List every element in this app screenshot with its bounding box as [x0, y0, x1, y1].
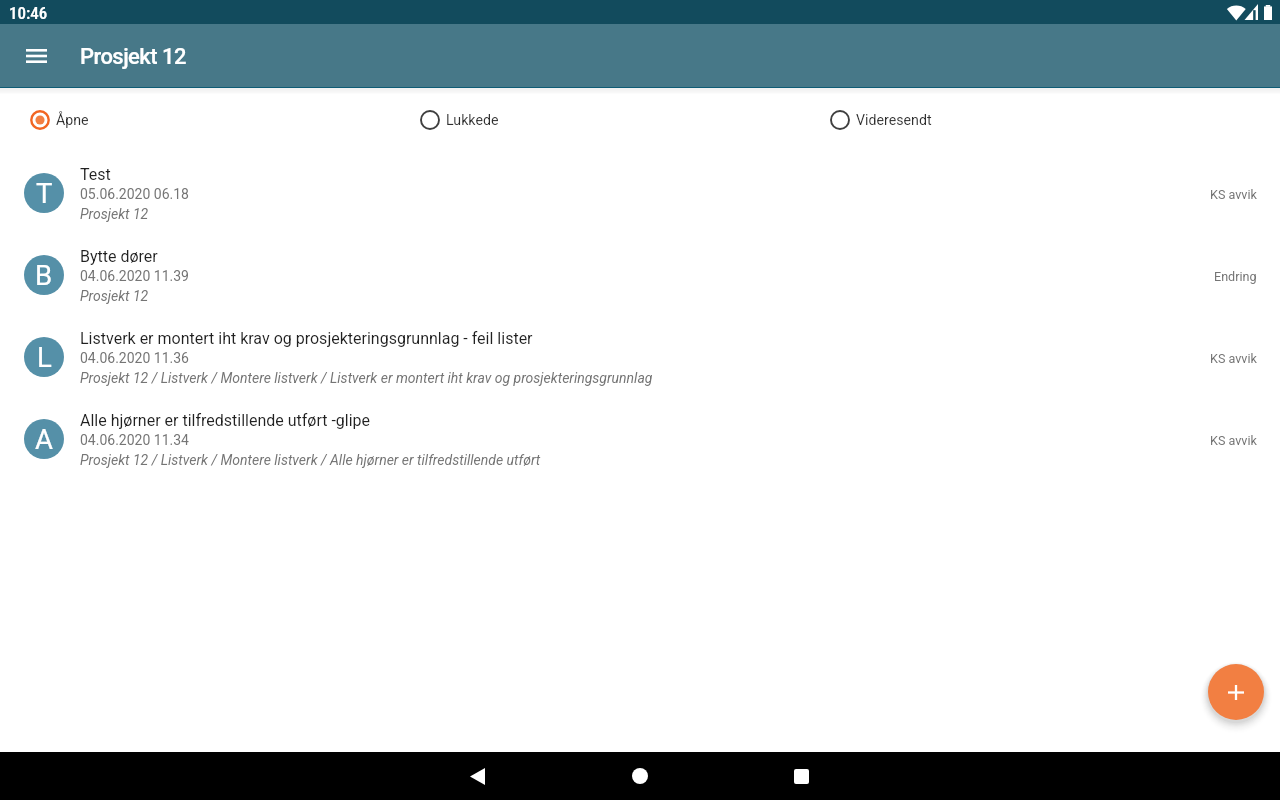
- button[interactable]: A: [0, 397, 1280, 479]
- button[interactable]: Åpne: [22, 100, 97, 140]
- staticText: Prosjekt 12: [80, 44, 186, 70]
- button[interactable]: T: [0, 151, 1280, 233]
- button[interactable]: Open navigation menu: [12, 32, 60, 80]
- staticText: KS avvik: [1210, 351, 1257, 366]
- button[interactable]: B: [0, 233, 1280, 315]
- staticText: 05.06.2020 06.18: [80, 186, 189, 202]
- button[interactable]: Videresendt: [822, 100, 940, 140]
- staticText: 10:46: [9, 3, 48, 23]
- staticText: 04.06.2020 11.36: [80, 350, 189, 366]
- button[interactable]: Lukkede: [412, 100, 507, 140]
- staticText: Test: [80, 165, 111, 184]
- staticText: L: [37, 341, 52, 373]
- staticText: Prosjekt 12: [80, 288, 149, 304]
- staticText: Bytte dører: [80, 247, 158, 266]
- staticText: Alle hjørner er tilfredstillende utført …: [80, 411, 371, 430]
- button[interactable]: Back: [453, 752, 501, 800]
- staticText: 04.06.2020 11.39: [80, 268, 189, 284]
- staticText: B: [35, 259, 53, 291]
- staticText: 04.06.2020 11.34: [80, 432, 189, 448]
- staticText: Videresendt: [856, 112, 932, 129]
- staticText: KS avvik: [1210, 433, 1257, 448]
- staticText: A: [35, 423, 53, 455]
- button[interactable]: Add new item: [1208, 664, 1264, 720]
- staticText: T: [36, 177, 53, 209]
- staticText: Prosjekt 12 / Listverk / Montere listver…: [80, 370, 653, 386]
- button[interactable]: L: [0, 315, 1280, 397]
- button[interactable]: Recent apps: [777, 752, 825, 800]
- staticText: Prosjekt 12: [80, 206, 149, 222]
- button[interactable]: Home: [616, 752, 664, 800]
- staticText: Lukkede: [446, 112, 499, 129]
- staticText: Listverk er montert iht krav og prosjekt…: [80, 329, 533, 348]
- staticText: Endring: [1214, 269, 1257, 284]
- staticText: KS avvik: [1210, 187, 1257, 202]
- staticText: Prosjekt 12 / Listverk / Montere listver…: [80, 452, 541, 468]
- staticText: Åpne: [56, 112, 89, 129]
